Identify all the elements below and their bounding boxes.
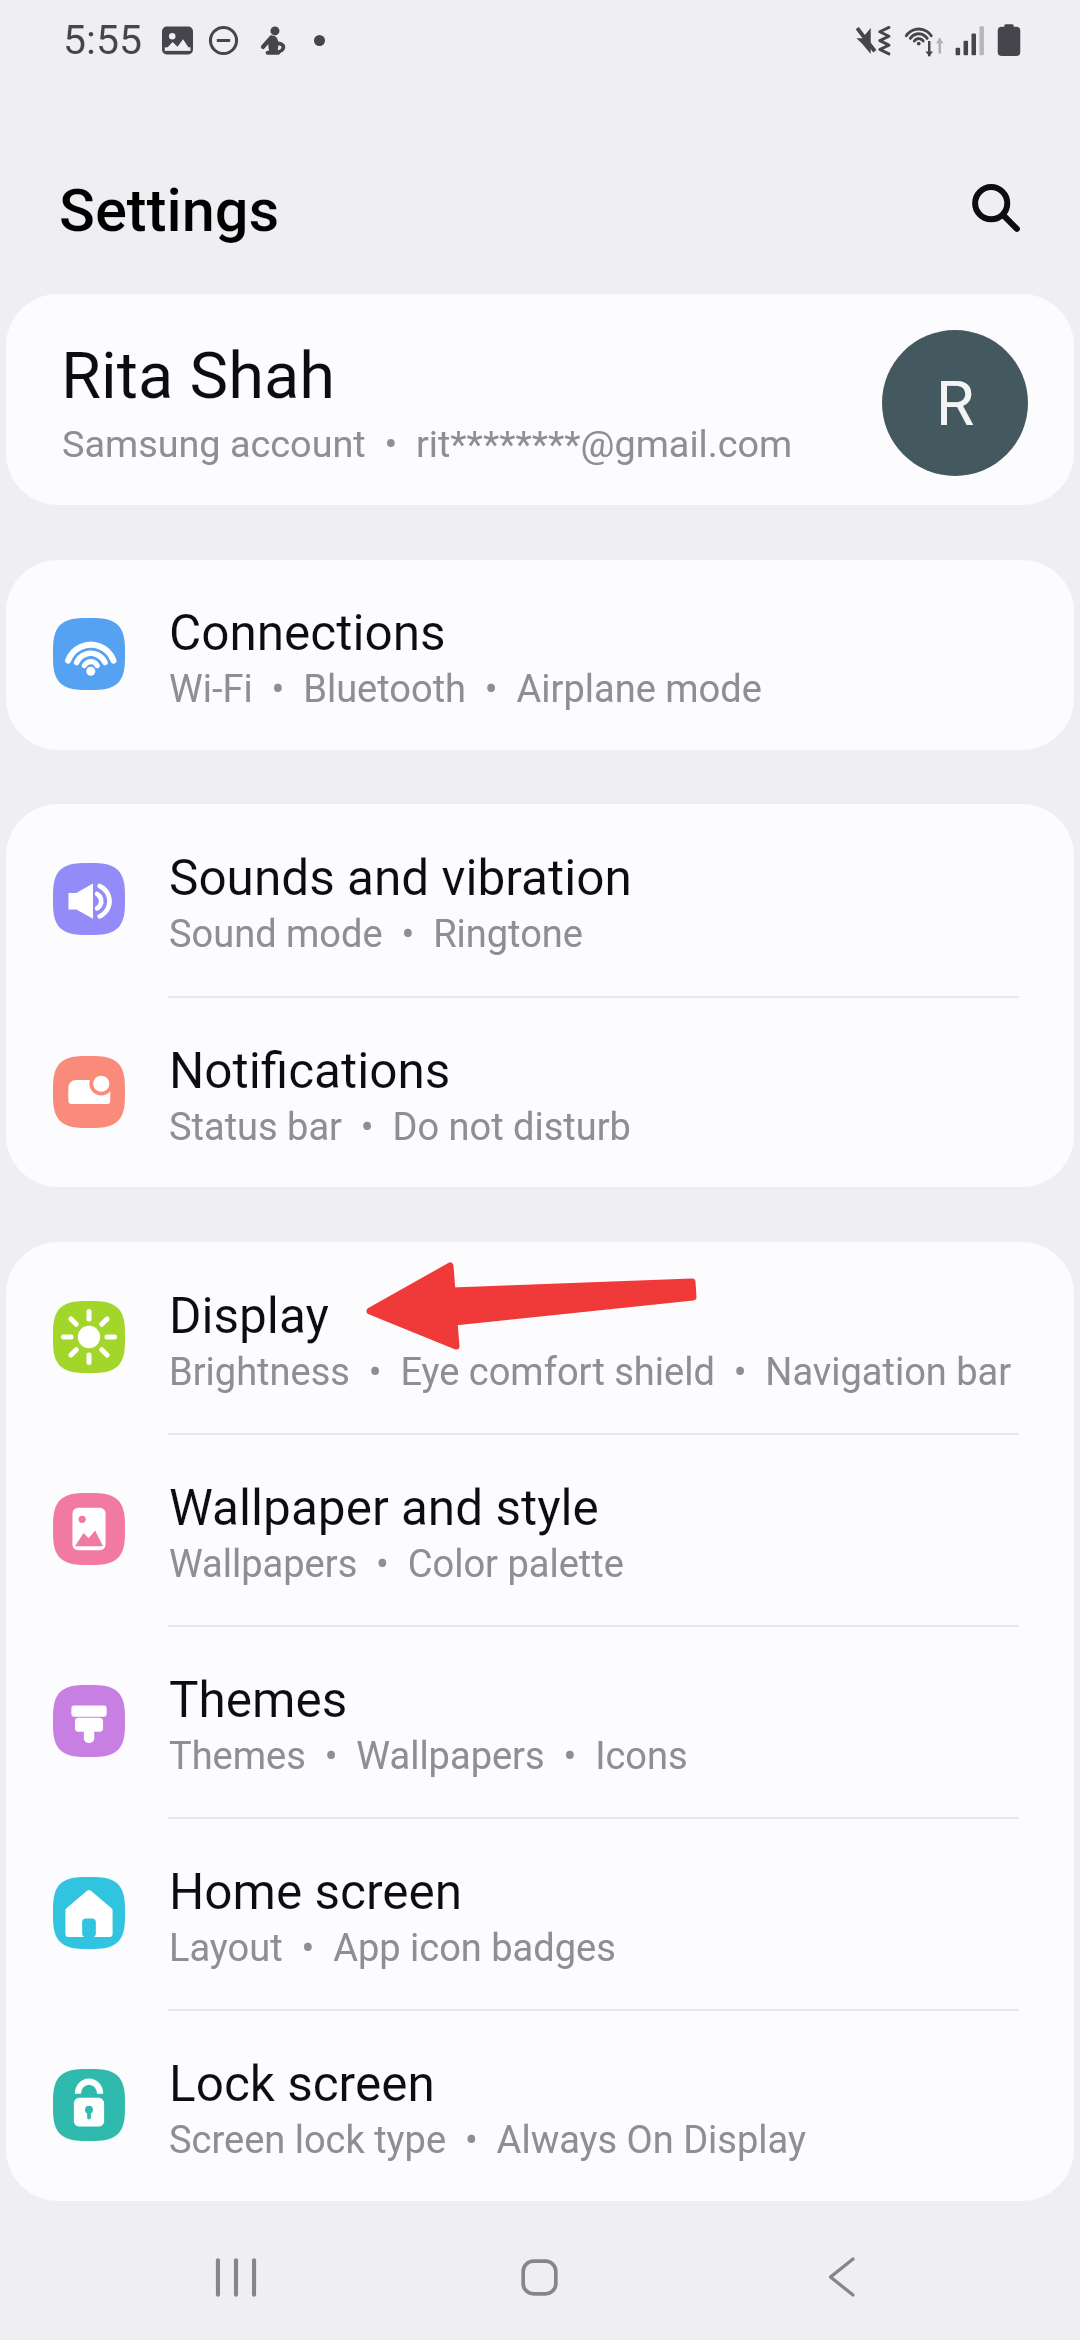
button[interactable]: Rita Shah xyxy=(6,294,1074,505)
button[interactable]: Back xyxy=(751,2207,931,2340)
staticText: Samsung account • rit********@gmail.com xyxy=(62,422,793,466)
staticText: Notifications xyxy=(169,1042,451,1100)
staticText: Wallpaper and style xyxy=(169,1479,599,1537)
staticText: Themes • Wallpapers • Icons xyxy=(169,1734,688,1779)
button[interactable]: Connections xyxy=(6,560,1074,750)
button[interactable]: Recent apps xyxy=(146,2207,326,2340)
staticText: Sound mode • Ringtone xyxy=(169,912,583,957)
staticText: Layout • App icon badges xyxy=(169,1926,616,1971)
staticText: Sounds and vibration xyxy=(169,849,632,907)
staticText: Brightness • Eye comfort shield • Naviga… xyxy=(169,1350,1012,1395)
staticText: Settings xyxy=(59,176,280,246)
staticText: Home screen xyxy=(169,1863,463,1921)
button[interactable]: Sounds and vibration xyxy=(6,804,1074,996)
button[interactable]: Wallpaper and style xyxy=(6,1435,1074,1625)
staticText: Display xyxy=(169,1287,329,1345)
staticText: Wallpapers • Color palette xyxy=(169,1542,624,1587)
staticText: Status bar • Do not disturb xyxy=(169,1105,631,1150)
button[interactable]: Home xyxy=(449,2207,629,2340)
button[interactable]: Notifications xyxy=(6,998,1074,1187)
button[interactable]: Search xyxy=(949,161,1043,255)
button[interactable]: Lock screen xyxy=(6,2011,1074,2201)
staticText: 5:55 xyxy=(63,16,143,64)
button[interactable]: Themes xyxy=(6,1627,1074,1817)
button[interactable]: Home screen xyxy=(6,1819,1074,2009)
staticText: Themes xyxy=(169,1671,348,1729)
staticText: Rita Shah xyxy=(61,338,336,414)
staticText: Lock screen xyxy=(169,2055,435,2113)
staticText: Screen lock type • Always On Display xyxy=(169,2118,806,2163)
staticText: Connections xyxy=(169,604,446,662)
staticText: Wi-Fi • Bluetooth • Airplane mode xyxy=(169,667,762,712)
button[interactable]: Display xyxy=(6,1242,1074,1433)
staticText: R xyxy=(936,367,975,440)
